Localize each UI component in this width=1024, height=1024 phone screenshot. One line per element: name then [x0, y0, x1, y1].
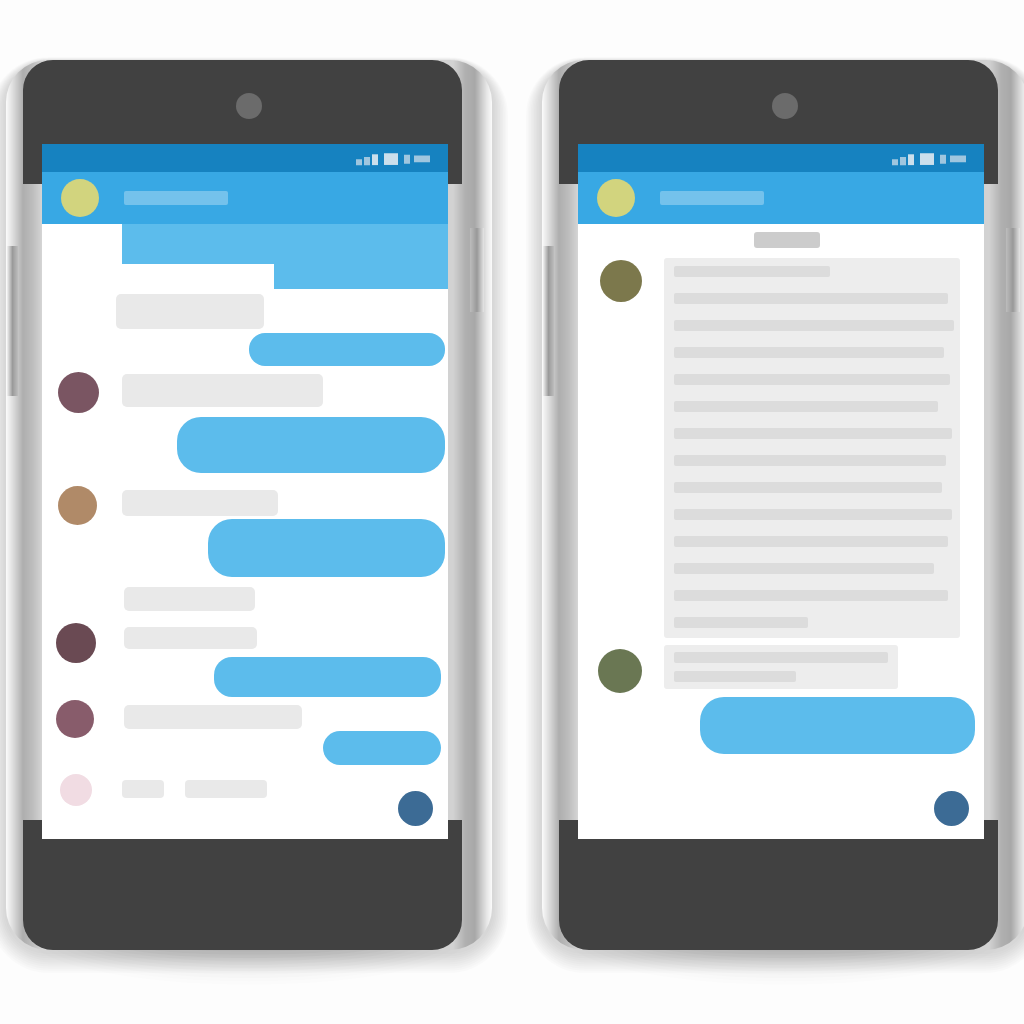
other: Signal, wifi and battery status [892, 151, 970, 166]
button[interactable]: Contact avatar [58, 486, 97, 525]
button[interactable]: New message [934, 791, 969, 826]
button[interactable]: Contact avatar [56, 700, 94, 738]
button[interactable]: Received message [664, 645, 898, 689]
button[interactable]: Sent message [249, 333, 445, 366]
button[interactable]: Sent message [177, 417, 445, 473]
button[interactable]: Contact avatar [58, 372, 99, 413]
other: Signal, wifi and battery status [356, 151, 434, 166]
button[interactable]: Long received message [664, 258, 960, 638]
button[interactable]: Contact avatar [60, 774, 92, 806]
button[interactable]: Contact avatar [598, 649, 642, 693]
button[interactable]: Sent message [208, 519, 445, 577]
button[interactable]: Sent message [323, 731, 441, 765]
button[interactable]: Sent message [700, 697, 975, 754]
button[interactable]: Contact avatar [56, 623, 96, 663]
button[interactable]: Sent message [214, 657, 441, 697]
button[interactable]: New message [398, 791, 433, 826]
button[interactable]: Conversation title [42, 172, 448, 224]
button[interactable]: Contact avatar [600, 260, 642, 302]
button[interactable]: Conversation title [578, 172, 984, 224]
